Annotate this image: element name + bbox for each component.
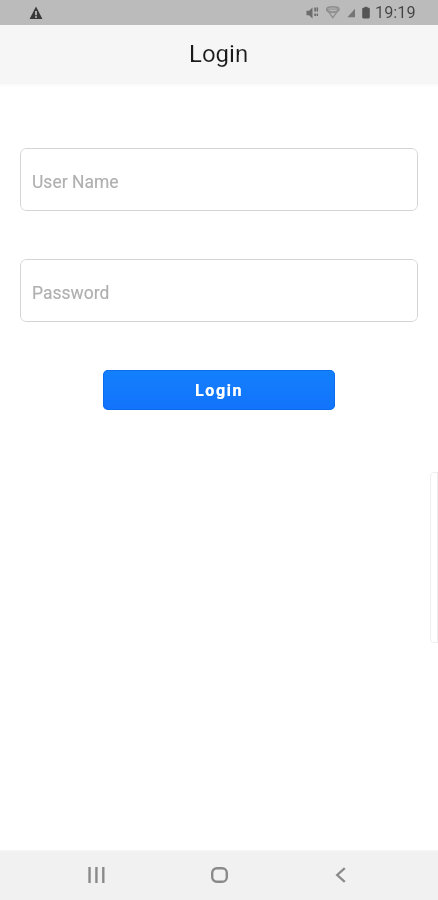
staticText: User Name <box>32 172 119 193</box>
button[interactable]: Recents <box>68 850 124 900</box>
staticText: 19:19 <box>375 3 416 22</box>
button[interactable]: Home <box>191 850 247 900</box>
button[interactable]: Back <box>313 850 369 900</box>
button[interactable]: Password <box>20 259 418 322</box>
staticText: Password <box>32 283 110 304</box>
staticText: Login <box>195 381 244 400</box>
button[interactable]: Login <box>103 370 335 410</box>
staticText: Login <box>189 40 249 68</box>
button[interactable]: User Name <box>20 148 418 211</box>
